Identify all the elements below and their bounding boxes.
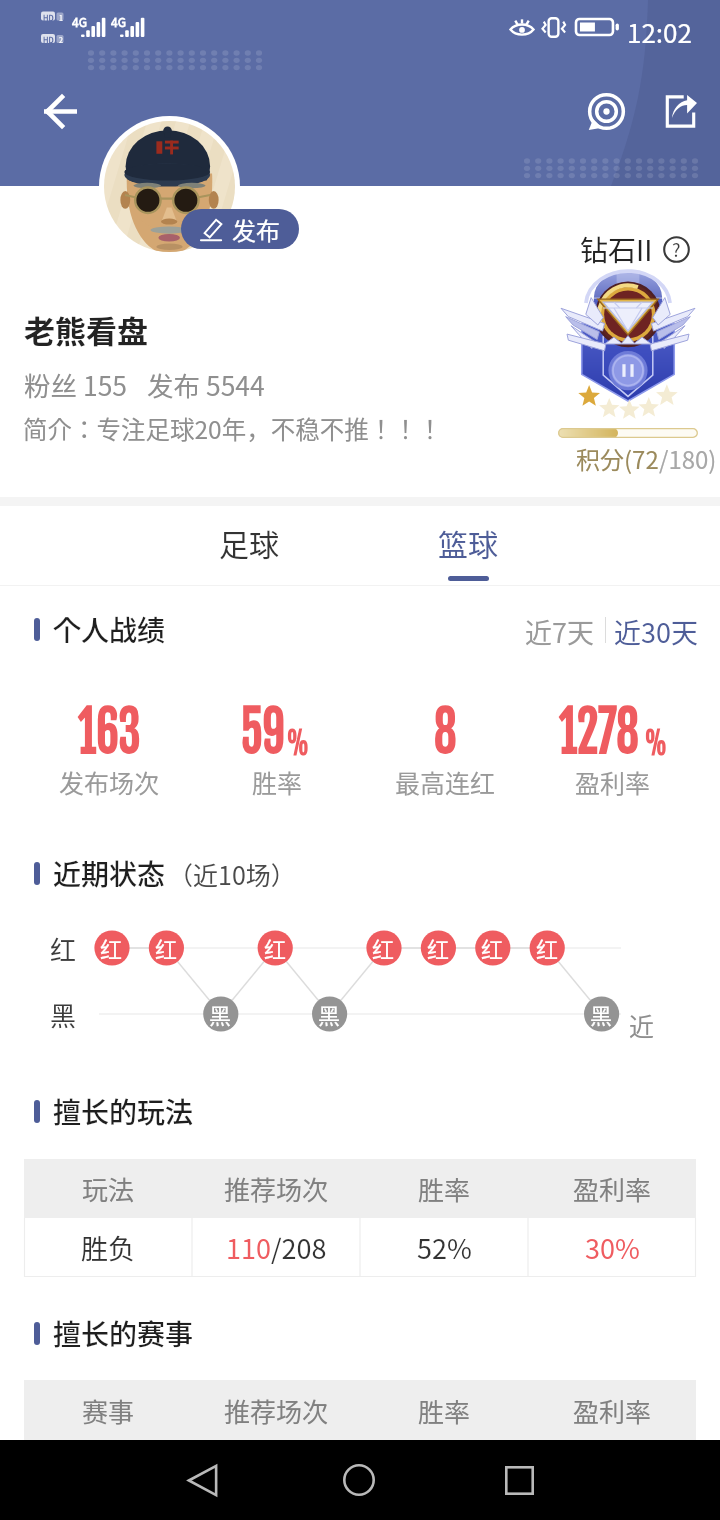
staticText: 红: [100, 932, 123, 964]
staticText: 发布 5544: [147, 365, 265, 403]
button[interactable]: 近30天: [610, 612, 702, 650]
staticText: 粉丝 155: [24, 365, 128, 403]
button[interactable]: Messages: [578, 83, 634, 139]
staticText: %: [644, 725, 667, 763]
staticText: 红: [372, 932, 395, 964]
staticText: ?: [672, 236, 681, 262]
staticText: 推荐场次: [224, 1392, 329, 1430]
staticText: 红: [264, 932, 287, 964]
staticText: 积分(72: [576, 441, 659, 476]
staticText: 红: [427, 932, 450, 964]
staticText: 52%: [417, 1228, 472, 1267]
staticText: 胜负: [81, 1228, 135, 1267]
staticText: 赛事: [82, 1392, 135, 1430]
staticText: 8: [434, 697, 457, 767]
staticText: 1278: [559, 697, 639, 767]
button[interactable]: 足球: [189, 506, 309, 585]
staticText: 近: [629, 1007, 655, 1043]
staticText: 红: [536, 932, 559, 964]
staticText: 老熊看盘: [24, 307, 148, 352]
staticText: 黑: [590, 998, 613, 1030]
staticText: 近7天: [525, 612, 594, 650]
staticText: 盈利率: [575, 764, 651, 800]
staticText: 红: [481, 932, 504, 964]
staticText: 4G: [111, 13, 126, 30]
staticText: 2: [59, 35, 63, 43]
staticText: 12:02: [627, 13, 692, 51]
staticText: 最高连红: [395, 764, 496, 800]
staticText: 胜率: [418, 1170, 471, 1208]
button[interactable]: Back: [166, 1444, 238, 1516]
staticText: 163: [78, 697, 141, 767]
staticText: 1: [59, 13, 63, 21]
staticText: 110: [226, 1228, 271, 1267]
staticText: HD: [43, 34, 54, 43]
button[interactable]: Share: [652, 83, 708, 139]
staticText: 盈利率: [573, 1392, 652, 1430]
staticText: 红: [155, 932, 178, 964]
button[interactable]: Recents: [483, 1444, 555, 1516]
staticText: 红: [50, 930, 77, 968]
staticText: 简介：专注足球20年，不稳不推！！！: [23, 411, 443, 446]
staticText: 擅长的玩法: [53, 1091, 194, 1132]
staticText: 黑: [209, 998, 232, 1030]
staticText: 胜率: [418, 1392, 471, 1430]
staticText: 推荐场次: [224, 1170, 329, 1208]
button[interactable]: Back: [34, 85, 86, 137]
button[interactable]: 发布: [181, 209, 299, 249]
staticText: 胜率: [252, 764, 303, 800]
staticText: 盈利率: [573, 1170, 652, 1208]
staticText: 发布场次: [59, 764, 160, 800]
button[interactable]: Help: [663, 236, 690, 263]
staticText: /208: [271, 1228, 327, 1267]
staticText: 59: [241, 697, 285, 767]
staticText: 钻石II: [580, 229, 653, 270]
staticText: %: [286, 725, 309, 763]
staticText: /180): [659, 441, 717, 476]
staticText: 4G: [72, 13, 87, 30]
staticText: 足球: [219, 521, 279, 564]
staticText: （近10场）: [168, 856, 296, 892]
staticText: 近期状态: [53, 853, 166, 894]
staticText: 黑: [318, 998, 341, 1030]
button[interactable]: 近7天: [519, 612, 599, 650]
staticText: 发布: [232, 212, 280, 247]
staticText: 黑: [50, 996, 77, 1034]
button[interactable]: 篮球: [408, 506, 528, 585]
staticText: 擅长的赛事: [53, 1313, 194, 1354]
staticText: 篮球: [438, 521, 498, 564]
staticText: 近30天: [614, 612, 698, 650]
staticText: 玩法: [82, 1170, 135, 1208]
staticText: 30%: [585, 1228, 640, 1267]
staticText: 个人战绩: [53, 609, 166, 650]
button[interactable]: Home: [323, 1444, 395, 1516]
staticText: HD: [43, 12, 54, 21]
